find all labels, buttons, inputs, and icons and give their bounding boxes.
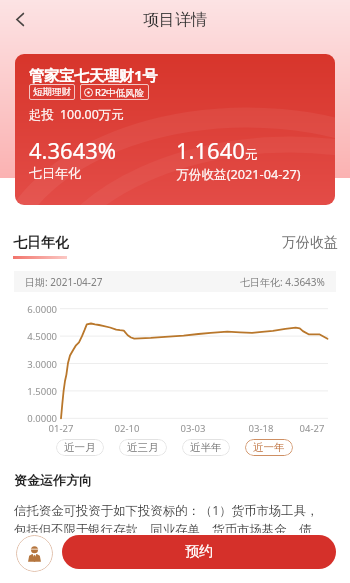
button[interactable]: Back — [6, 5, 34, 33]
staticText: 6.0000 — [19, 303, 57, 316]
staticText: 4.5000 — [19, 330, 57, 343]
staticText: 万份收益(2021-04-27) — [176, 165, 301, 182]
button[interactable]: 近一年 — [245, 439, 293, 456]
staticText: 0.0000 — [19, 412, 57, 425]
staticText: 03-18 — [241, 422, 281, 435]
staticText: 短期理财 — [33, 86, 71, 98]
staticText: 近一月 — [64, 441, 96, 454]
button[interactable]: Customer service — [16, 535, 53, 572]
staticText: 预约 — [185, 543, 213, 561]
staticText: 近半年 — [190, 441, 222, 454]
button[interactable]: 七日年化 — [13, 234, 69, 259]
staticText: 100.00万元 — [60, 106, 124, 123]
staticText: 4.3643% — [29, 135, 117, 165]
staticText: 元 — [245, 147, 258, 163]
staticText: 3.0000 — [19, 358, 57, 371]
button[interactable]: 预约 — [62, 535, 336, 569]
staticText: 七日年化 — [13, 234, 69, 252]
button[interactable]: 近半年 — [182, 439, 230, 456]
button[interactable]: 近一月 — [56, 439, 104, 456]
staticText: 04-27 — [292, 422, 332, 435]
staticText: 管家宝七天理财1号 — [29, 65, 158, 85]
button[interactable]: 万份收益 — [282, 234, 338, 252]
staticText: 资金运作方向 — [14, 472, 92, 488]
staticText: 02-10 — [107, 422, 147, 435]
button[interactable]: 近三月 — [119, 439, 167, 456]
staticText: 03-03 — [173, 422, 213, 435]
staticText: 1.1640 — [176, 135, 245, 165]
staticText: 项目详情 — [143, 10, 207, 30]
staticText: 七日年化: 4.3643% — [240, 275, 325, 289]
staticText: 起投 — [29, 107, 54, 123]
staticText: 日期: 2021-04-27 — [25, 275, 103, 289]
staticText: 万份收益 — [282, 234, 338, 252]
staticText: 近三月 — [127, 441, 159, 454]
staticText: R2中低风险 — [95, 86, 145, 99]
staticText: 1.5000 — [19, 385, 57, 398]
staticText: 信托资金可投资于如下投资标的：（1）货币市场工具，包括但不限于银行存款、同业存单… — [14, 502, 326, 537]
staticText: 近一年 — [253, 441, 285, 454]
staticText: 01-27 — [41, 422, 81, 435]
staticText: 七日年化 — [29, 165, 81, 181]
